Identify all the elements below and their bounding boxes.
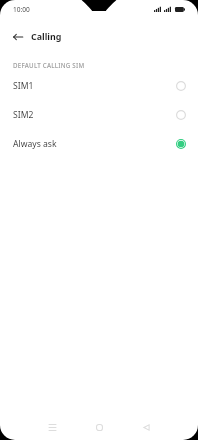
button[interactable]: SIM1 <box>0 71 198 100</box>
button[interactable]: Back <box>123 415 170 440</box>
staticText: SIM1 <box>13 80 34 92</box>
staticText: SIM2 <box>13 109 34 121</box>
button[interactable]: SIM2 <box>0 100 198 129</box>
staticText: Always ask <box>13 138 57 150</box>
staticText: 10:00 <box>13 5 30 14</box>
button[interactable]: Always ask <box>0 129 198 158</box>
staticText: DEFAULT CALLING SIM <box>13 61 85 69</box>
button[interactable]: Back <box>7 25 29 47</box>
button[interactable]: Home <box>76 415 123 440</box>
staticText: Calling <box>31 30 62 42</box>
button[interactable]: Recent apps <box>28 415 76 440</box>
